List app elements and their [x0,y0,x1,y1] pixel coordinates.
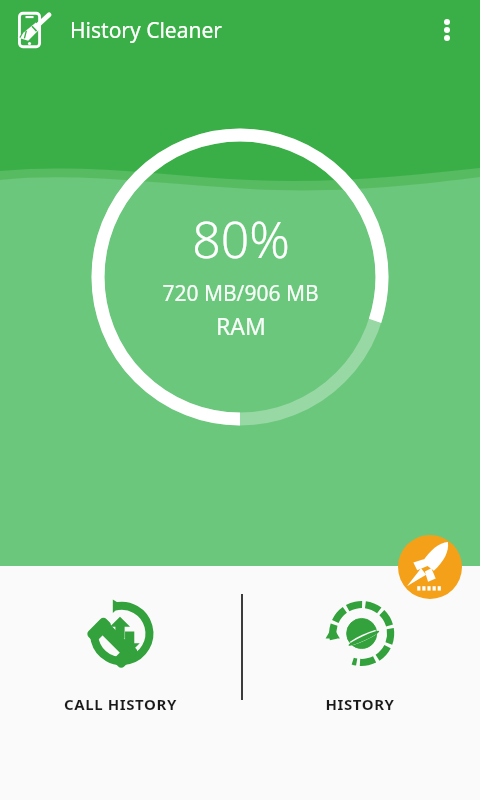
staticText: HISTORY [325,694,395,714]
staticText: RAM [216,310,266,341]
staticText: 720 MB/906 MB [162,279,319,308]
button[interactable]: CALL HISTORY [0,566,240,756]
button[interactable]: Boost [398,535,462,599]
staticText: History Cleaner [70,16,222,45]
button[interactable]: More options [424,7,470,53]
button[interactable]: History Cleaner [10,8,54,52]
button[interactable]: HISTORY [240,566,480,756]
staticText: CALL HISTORY [64,694,177,714]
staticText: 80% [192,205,290,273]
